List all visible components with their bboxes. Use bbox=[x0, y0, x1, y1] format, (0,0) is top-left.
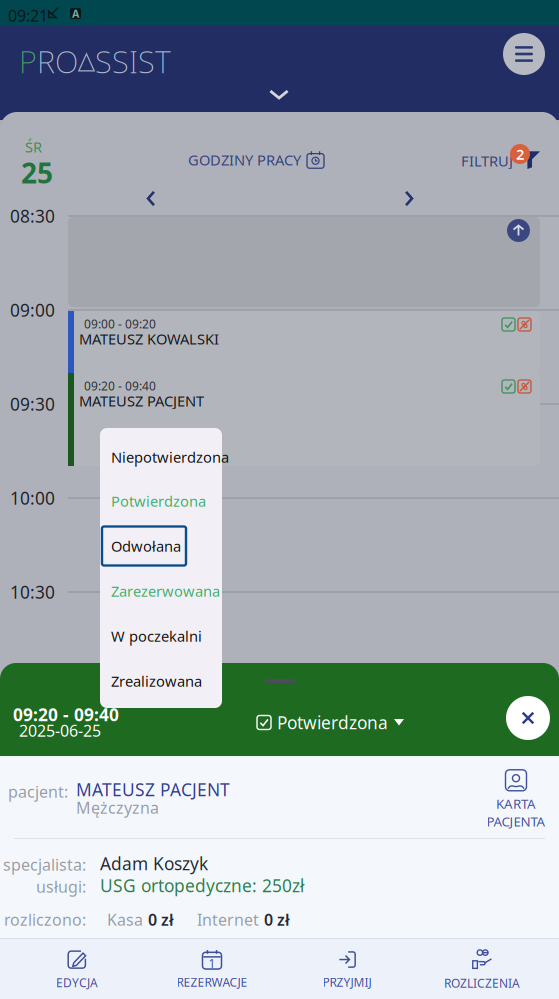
button[interactable]: ROZLICZENIA bbox=[417, 941, 547, 999]
staticText: MATEUSZ KOWALSKI bbox=[79, 329, 219, 348]
staticText: Potwierdzona bbox=[111, 491, 206, 511]
staticText: PACJENTA bbox=[486, 812, 545, 830]
button[interactable]: Close appointment bbox=[506, 696, 550, 740]
staticText: 0 zł bbox=[148, 909, 174, 930]
staticText: GODZINY PRACY bbox=[188, 150, 301, 169]
staticText: 2 bbox=[516, 144, 524, 164]
staticText: MATEUSZ PACJENT bbox=[76, 778, 230, 801]
button[interactable]: Scroll to now bbox=[507, 219, 530, 242]
button[interactable]: Zrealizowana bbox=[100, 660, 222, 702]
staticText: SSIST bbox=[95, 41, 171, 82]
button[interactable]: Open menu bbox=[503, 33, 545, 75]
staticText: Internet bbox=[197, 909, 259, 930]
button[interactable]: EDYCJA bbox=[12, 941, 142, 999]
button[interactable]: GODZINY PRACY bbox=[188, 150, 324, 169]
staticText: 09:20 - 09:40 bbox=[13, 703, 119, 726]
staticText: Zarezerwowana bbox=[111, 581, 220, 601]
button[interactable]: KARTA bbox=[474, 769, 558, 831]
staticText: Zrealizowana bbox=[111, 671, 202, 691]
button[interactable]: Potwierdzona bbox=[100, 480, 222, 522]
staticText: 1 bbox=[208, 955, 215, 971]
staticText: 08:30 bbox=[10, 204, 55, 227]
staticText: KARTA bbox=[496, 795, 536, 812]
staticText: ROZLICZENIA bbox=[444, 975, 520, 991]
staticText: EDYCJA bbox=[56, 974, 98, 990]
button[interactable]: Odwołana bbox=[100, 525, 222, 567]
staticText: pacjent: bbox=[8, 781, 68, 802]
staticText: Mężczyzna bbox=[76, 797, 159, 818]
button[interactable]: W poczekalni bbox=[100, 615, 222, 657]
staticText: 09:00 - 09:20 bbox=[84, 316, 156, 332]
staticText: P bbox=[19, 41, 37, 82]
staticText: MATEUSZ PACJENT bbox=[79, 391, 204, 410]
button[interactable]: FILTRUJ bbox=[461, 144, 541, 174]
staticText: 10:30 bbox=[10, 580, 55, 603]
button[interactable]: Niepotwierdzona bbox=[100, 436, 222, 478]
staticText: REZERWACJE bbox=[176, 974, 247, 990]
button[interactable]: Next day bbox=[405, 190, 413, 206]
staticText: specjalista: bbox=[3, 854, 86, 875]
staticText: USG ortopedyczne: 250zł bbox=[100, 874, 304, 897]
button[interactable]: Potwierdzona bbox=[257, 711, 404, 734]
button[interactable]: Zarezerwowana bbox=[100, 570, 222, 612]
staticText: usługi: bbox=[36, 876, 86, 897]
staticText: Niepotwierdzona bbox=[111, 447, 229, 467]
staticText: Odwołana bbox=[111, 536, 181, 556]
staticText: Potwierdzona bbox=[277, 711, 388, 734]
staticText: Kasa bbox=[107, 909, 143, 930]
staticText: 10:00 bbox=[10, 486, 55, 509]
button[interactable]: PRZYJMIJ bbox=[282, 941, 412, 999]
staticText: 25 bbox=[21, 154, 53, 191]
button[interactable]: Collapse header bbox=[269, 90, 289, 99]
button[interactable]: 1 bbox=[147, 941, 277, 999]
button[interactable]: Previous day bbox=[147, 190, 155, 206]
staticText: 0 zł bbox=[264, 909, 290, 930]
staticText: A bbox=[72, 6, 79, 21]
staticText: 09:20 - 09:40 bbox=[84, 378, 156, 394]
staticText: W poczekalni bbox=[111, 626, 202, 646]
staticText: rozliczono: bbox=[4, 909, 86, 930]
staticText: FILTRUJ bbox=[461, 151, 513, 170]
button[interactable]: 09:20 - 09:40 bbox=[68, 373, 540, 466]
button[interactable]: 09:00 - 09:20 bbox=[68, 311, 540, 373]
staticText: Adam Koszyk bbox=[100, 852, 208, 875]
staticText: 09:00 bbox=[10, 298, 55, 321]
staticText: 09:21 bbox=[8, 5, 48, 26]
staticText: RO bbox=[37, 41, 78, 82]
staticText: 09:30 bbox=[10, 392, 55, 415]
staticText: 2025-06-25 bbox=[19, 720, 101, 741]
staticText: ŚR bbox=[25, 137, 42, 156]
staticText: PRZYJMIJ bbox=[322, 974, 371, 990]
